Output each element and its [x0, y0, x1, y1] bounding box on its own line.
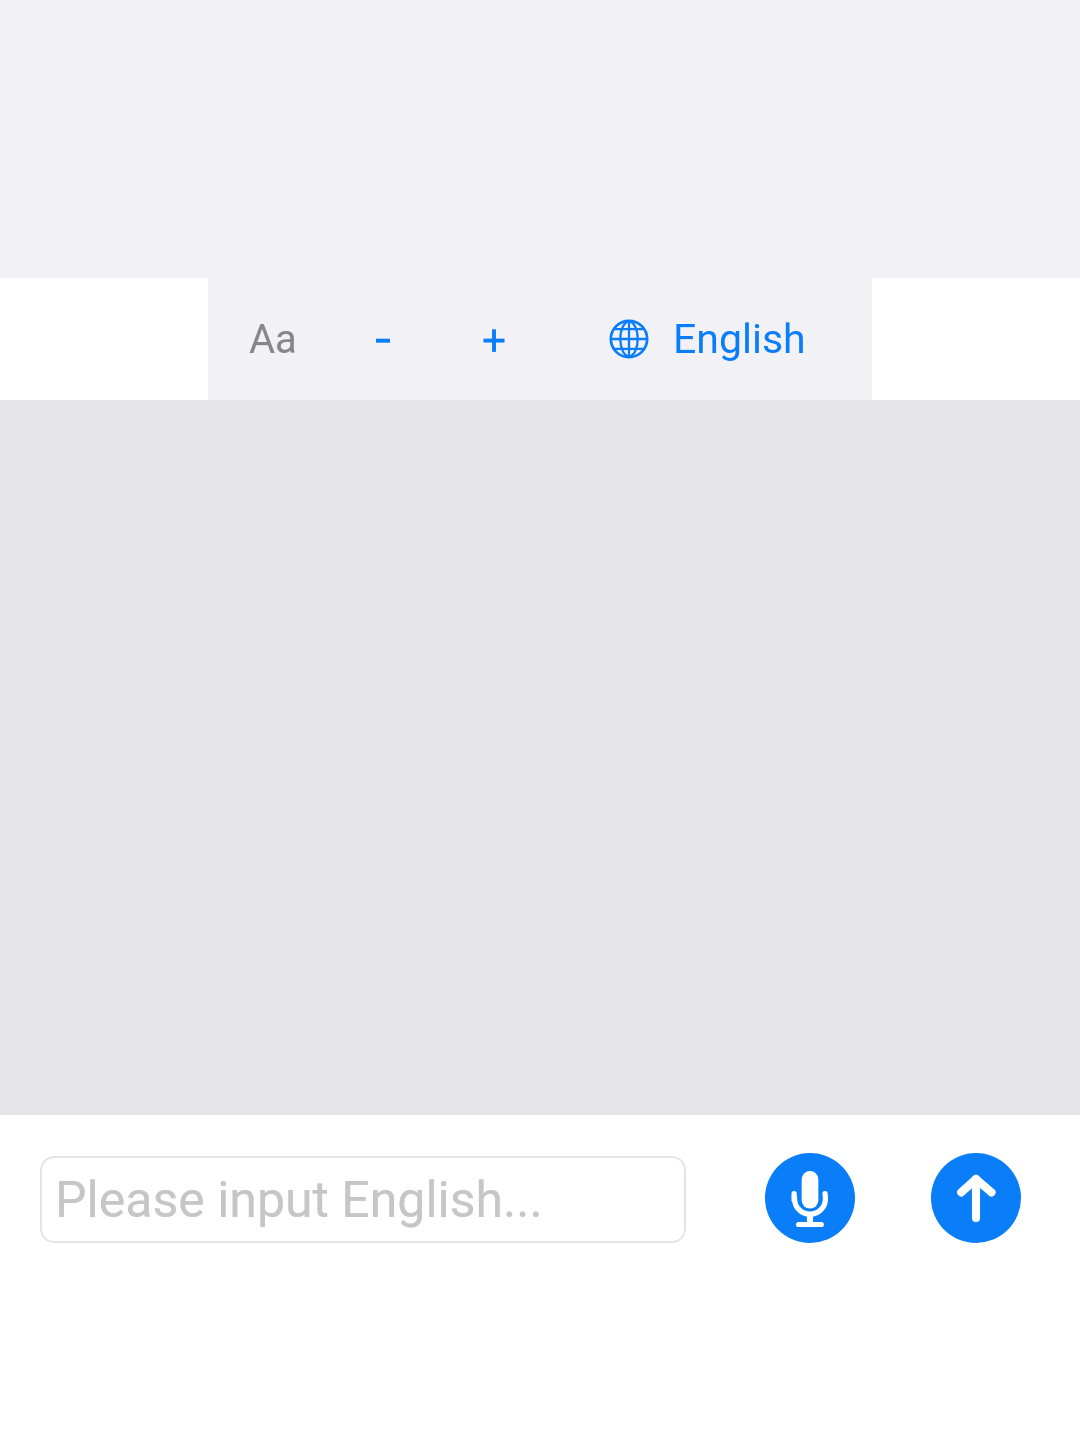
- button[interactable]: Aa: [208, 278, 338, 400]
- staticText: Aa: [249, 316, 297, 363]
- staticText: Please input English...: [55, 1171, 543, 1230]
- staticText: English: [673, 315, 806, 363]
- button[interactable]: English: [560, 278, 872, 400]
- button[interactable]: Send: [931, 1153, 1021, 1243]
- button[interactable]: Voice input: [765, 1153, 855, 1243]
- button[interactable]: Increase text size: [428, 278, 560, 400]
- button[interactable]: Please input English...: [40, 1156, 686, 1243]
- button[interactable]: Decrease text size: [338, 278, 428, 400]
